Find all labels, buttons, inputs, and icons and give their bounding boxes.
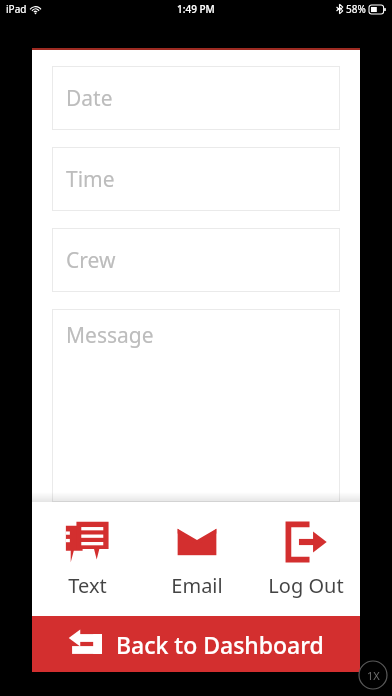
button[interactable]: Email (142, 502, 251, 616)
staticText: Back to Dashboard (116, 629, 324, 660)
button[interactable]: Log Out (251, 502, 360, 616)
staticText: 58% (346, 2, 366, 16)
staticText: Crew (66, 246, 116, 275)
staticText: 1X (367, 668, 380, 683)
button[interactable]: Date (52, 66, 340, 130)
other: Email (175, 520, 219, 564)
staticText: 1:49 PM (177, 2, 215, 16)
staticText: Time (66, 165, 115, 194)
staticText: iPad (6, 2, 27, 16)
button[interactable]: Time (52, 147, 340, 211)
button[interactable]: Crew (52, 228, 340, 292)
staticText: Log Out (268, 572, 344, 599)
staticText: Date (66, 84, 113, 113)
staticText: Email (171, 572, 223, 599)
button[interactable]: Text (32, 502, 142, 616)
staticText: Message (66, 321, 154, 350)
button[interactable]: Message (52, 309, 340, 502)
other: Text (65, 520, 109, 564)
button[interactable]: Back to Dashboard (32, 616, 360, 672)
other: Log Out (284, 520, 328, 564)
staticText: Text (68, 572, 107, 599)
